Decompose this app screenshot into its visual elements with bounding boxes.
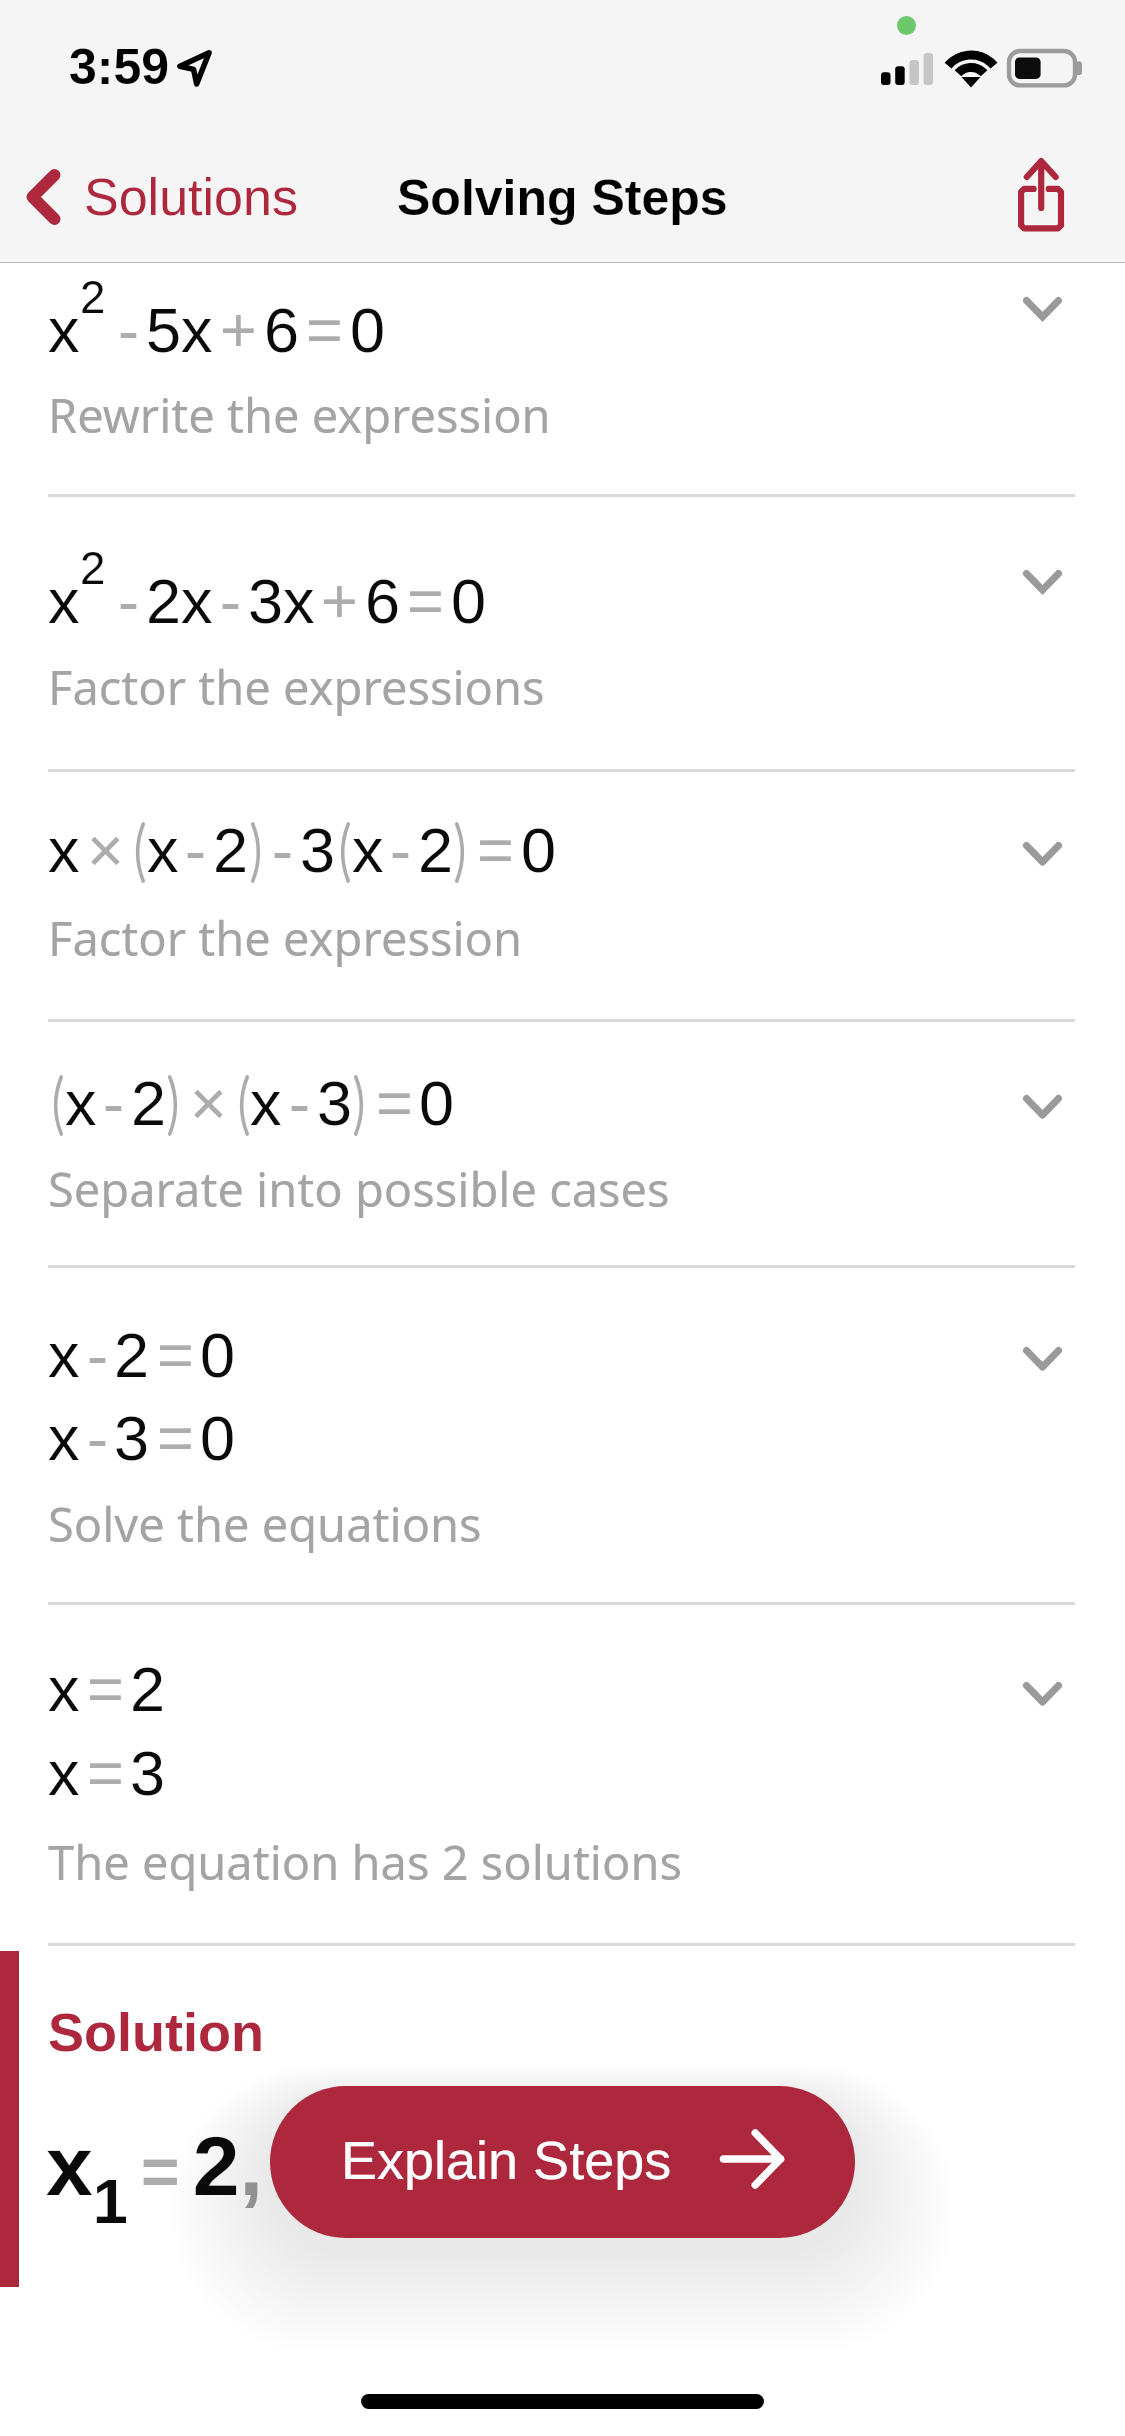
staticText: 0 [200, 1403, 236, 1473]
staticText: x [48, 1654, 80, 1724]
staticText: Solving Steps [397, 170, 728, 226]
button[interactable]: Expand step [992, 1650, 1092, 1738]
staticText: = [157, 1320, 194, 1390]
staticText: × [190, 1068, 227, 1138]
staticText: 3:59 [69, 39, 170, 95]
button[interactable]: Step 4: Separate into possible cases [0, 1022, 1125, 1265]
staticText: = [306, 295, 343, 365]
staticText: 6 [264, 295, 300, 365]
staticText: Solutions [84, 168, 298, 226]
staticText: - [87, 1403, 108, 1473]
staticText: 0 [419, 1068, 455, 1138]
staticText: 0 [451, 566, 487, 636]
button[interactable]: Step 6: The equation has 2 solutions [0, 1605, 1125, 1943]
button[interactable]: Step 5: Solve the equations [0, 1268, 1125, 1602]
staticText: 0 [521, 815, 557, 885]
staticText: Rewrite the expression [48, 383, 551, 447]
staticText: 3 [300, 815, 336, 885]
staticText: 3 [317, 1068, 353, 1138]
button[interactable]: Step 2: Factor the expressions [0, 497, 1125, 769]
staticText: - [272, 815, 293, 885]
staticText: + [321, 566, 358, 636]
button[interactable]: Share [1000, 155, 1082, 247]
staticText: x [65, 1068, 97, 1138]
staticText: - [118, 566, 139, 636]
staticText: x1 = 2, [46, 2119, 263, 2237]
staticText: Solve the equations [48, 1492, 482, 1556]
staticText: - [87, 1320, 108, 1390]
staticText: × [87, 815, 124, 885]
staticText: = [477, 815, 514, 885]
staticText: - [103, 1068, 124, 1138]
staticText: x [48, 566, 80, 636]
button[interactable]: Expand step [992, 265, 1092, 353]
staticText: 2 [80, 272, 106, 323]
staticText: The equation has 2 solutions [48, 1830, 682, 1894]
staticText: 6 [365, 566, 401, 636]
staticText: 2 [213, 815, 249, 885]
staticText: x [48, 1320, 80, 1390]
staticText: 0 [350, 295, 386, 365]
button[interactable]: Expand step [992, 1063, 1092, 1151]
button[interactable]: Expand step [992, 538, 1092, 626]
staticText: - [118, 295, 139, 365]
button[interactable]: Step 3: Factor the expression [0, 772, 1125, 1019]
staticText: 2 [130, 1654, 166, 1724]
staticText: Factor the expression [48, 906, 523, 970]
staticText: 2x [146, 566, 213, 636]
staticText: x [48, 815, 80, 885]
staticText: 2 [114, 1320, 150, 1390]
staticText: Separate into possible cases [48, 1157, 670, 1221]
staticText: + [220, 295, 257, 365]
staticText: Factor the expressions [48, 655, 545, 719]
button[interactable]: Expand step [992, 1315, 1092, 1403]
staticText: x [250, 1068, 282, 1138]
staticText: - [390, 815, 411, 885]
staticText: = [87, 1654, 124, 1724]
staticText: x [48, 1403, 80, 1473]
staticText: 3 [130, 1738, 166, 1808]
button[interactable]: Solution [48, 2002, 264, 2062]
button[interactable]: Explain Steps [270, 2086, 855, 2238]
button[interactable]: Expand step [992, 810, 1092, 898]
staticText: 3 [114, 1403, 150, 1473]
button[interactable]: Step 1: Rewrite the expression [0, 263, 1125, 494]
staticText: 5x [146, 295, 213, 365]
staticText: 2 [418, 815, 454, 885]
staticText: = [87, 1738, 124, 1808]
staticText: 0 [200, 1320, 236, 1390]
staticText: = [376, 1068, 413, 1138]
staticText: = [407, 566, 444, 636]
staticText: - [185, 815, 206, 885]
staticText: 3x [248, 566, 315, 636]
staticText: - [289, 1068, 310, 1138]
staticText: x [48, 1738, 80, 1808]
staticText: 2 [131, 1068, 167, 1138]
staticText: 2 [80, 543, 106, 594]
staticText: x [352, 815, 384, 885]
staticText: x [48, 295, 80, 365]
staticText: x [147, 815, 179, 885]
staticText: Explain Steps [341, 2130, 672, 2190]
button[interactable]: Solutions [8, 132, 308, 263]
staticText: - [220, 566, 241, 636]
staticText: = [157, 1403, 194, 1473]
